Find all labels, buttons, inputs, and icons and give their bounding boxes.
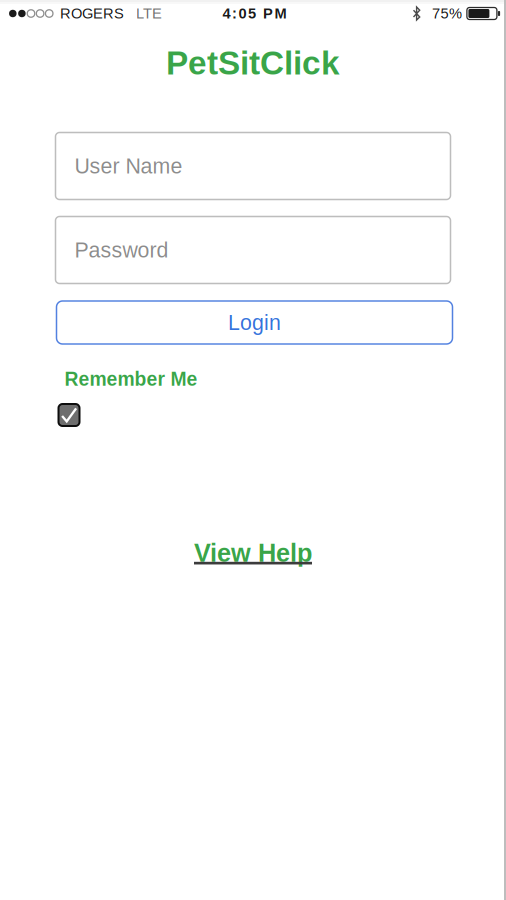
staticText: 4:05 PM bbox=[222, 5, 286, 22]
staticText: View Help bbox=[194, 539, 312, 567]
staticText: Login bbox=[228, 311, 281, 334]
staticText: Password bbox=[74, 238, 168, 262]
staticText: Remember Me bbox=[64, 368, 197, 390]
staticText: 75% bbox=[432, 5, 462, 22]
button[interactable]: Remember Me bbox=[52, 398, 85, 432]
button[interactable]: User Name bbox=[55, 132, 450, 199]
button[interactable]: Password bbox=[55, 216, 450, 283]
staticText: User Name bbox=[74, 154, 182, 178]
staticText: LTE bbox=[136, 5, 162, 22]
button[interactable]: Login bbox=[56, 301, 452, 344]
button[interactable]: View Help bbox=[186, 533, 320, 573]
staticText: ROGERS bbox=[60, 5, 124, 22]
staticText: PetSitClick bbox=[166, 44, 340, 82]
